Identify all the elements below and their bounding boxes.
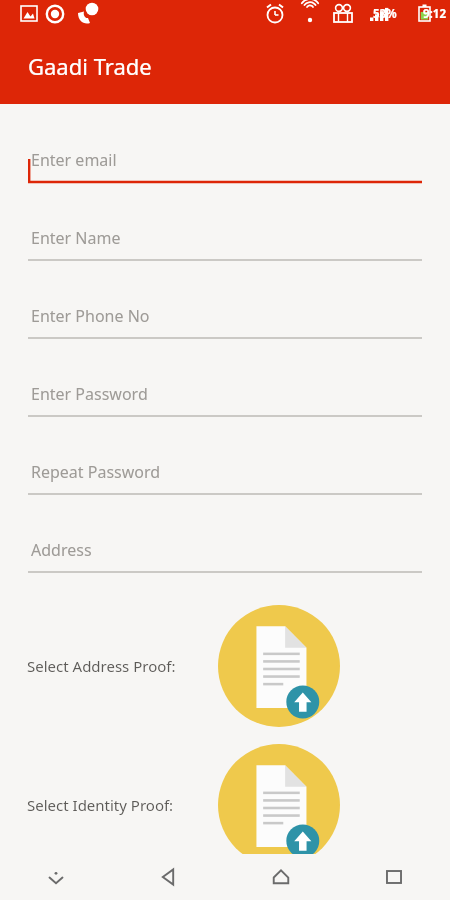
staticText: Repeat Password xyxy=(31,461,161,483)
staticText: Enter Password xyxy=(31,383,148,405)
button[interactable]: Back xyxy=(112,854,224,900)
staticText: Select Identity Proof: xyxy=(27,795,174,815)
button[interactable]: Recents xyxy=(337,854,450,900)
button[interactable]: Enter email xyxy=(0,123,450,201)
button[interactable]: Enter Password xyxy=(0,357,450,435)
staticText: 53% xyxy=(373,6,397,22)
staticText: Enter email xyxy=(31,149,117,171)
button[interactable]: Home xyxy=(224,854,337,900)
button[interactable]: Select Address Proof: xyxy=(0,605,450,727)
staticText: Gaadi Trade xyxy=(28,51,152,81)
button[interactable]: Select Identity Proof: xyxy=(0,744,450,866)
button[interactable]: Repeat Password xyxy=(0,435,450,513)
staticText: 9:12 xyxy=(423,6,446,22)
button[interactable]: Address xyxy=(0,513,450,591)
button[interactable]: Enter Name xyxy=(0,201,450,279)
staticText: Enter Phone No xyxy=(31,305,150,327)
staticText: Select Address Proof: xyxy=(27,656,176,676)
button[interactable]: Enter Phone No xyxy=(0,279,450,357)
staticText: Enter Name xyxy=(31,227,121,249)
staticText: Address xyxy=(31,539,92,561)
button[interactable]: Hide keyboard xyxy=(0,854,112,900)
